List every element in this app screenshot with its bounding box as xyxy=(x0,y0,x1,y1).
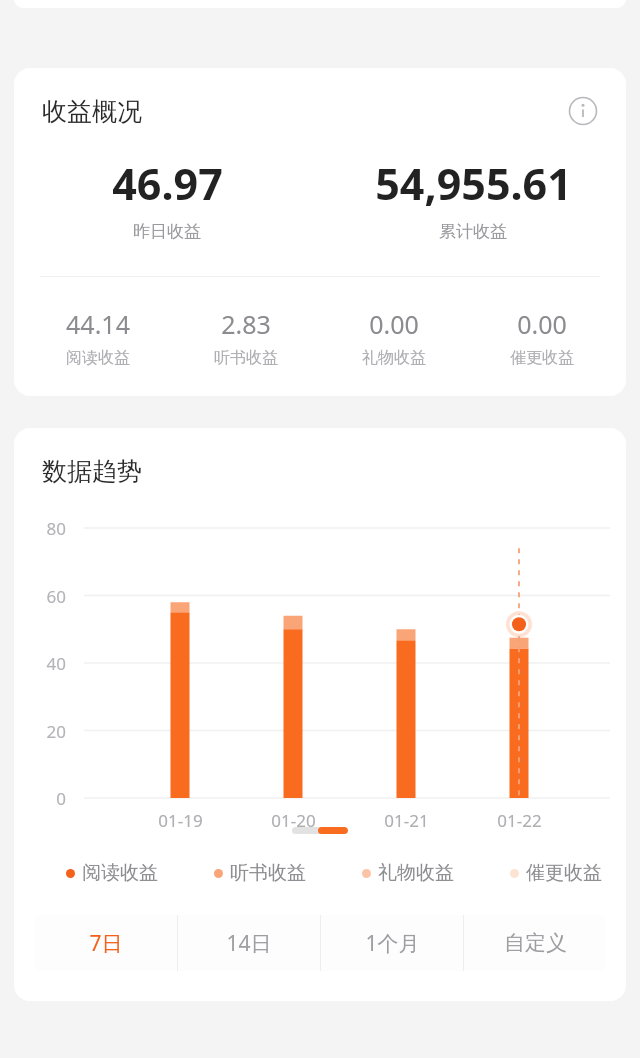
staticText: 54,955.61 xyxy=(375,154,572,213)
staticText: 阅读收益 xyxy=(66,348,130,368)
staticText: 催更收益 xyxy=(526,861,602,885)
staticText: 1个月 xyxy=(365,929,420,958)
staticText: 46.97 xyxy=(112,154,223,213)
button[interactable]: 0.00 xyxy=(468,307,616,368)
button[interactable]: 阅读收益 xyxy=(66,861,158,885)
staticText: 0.00 xyxy=(369,307,419,341)
button[interactable]: 礼物收益 xyxy=(362,861,454,885)
staticText: 40 xyxy=(46,652,66,675)
staticText: 阅读收益 xyxy=(82,861,158,885)
button[interactable]: 7日 xyxy=(34,915,177,971)
staticText: 累计收益 xyxy=(439,221,507,242)
button[interactable]: 54,955.61 xyxy=(320,154,626,242)
staticText: 44.14 xyxy=(66,307,130,341)
staticText: 催更收益 xyxy=(510,348,574,368)
staticText: 听书收益 xyxy=(230,861,306,885)
staticText: 20 xyxy=(46,720,66,743)
button[interactable]: 听书收益 xyxy=(214,861,306,885)
button[interactable]: 46.97 xyxy=(14,154,320,242)
button[interactable]: 2.83 xyxy=(172,307,320,368)
button[interactable]: 催更收益 xyxy=(510,861,602,885)
staticText: 礼物收益 xyxy=(362,348,426,368)
button[interactable]: 14日 xyxy=(178,915,320,971)
staticText: 数据趋势 xyxy=(42,456,142,487)
button[interactable]: 44.14 xyxy=(24,307,172,368)
staticText: 2.83 xyxy=(221,307,271,341)
button[interactable]: 自定义 xyxy=(464,915,606,971)
staticText: 0 xyxy=(56,787,66,810)
staticText: 自定义 xyxy=(504,930,567,956)
button[interactable]: 1个月 xyxy=(321,915,463,971)
staticText: 60 xyxy=(46,585,66,608)
staticText: 0.00 xyxy=(517,307,567,341)
staticText: 80 xyxy=(46,517,66,540)
staticText: 礼物收益 xyxy=(378,861,454,885)
staticText: 听书收益 xyxy=(214,348,278,368)
button[interactable]: 说明 xyxy=(566,94,600,128)
staticText: 01-22 xyxy=(497,809,542,832)
staticText: 14日 xyxy=(226,929,272,958)
staticText: 01-19 xyxy=(158,809,203,832)
staticText: 昨日收益 xyxy=(133,221,201,242)
staticText: 01-21 xyxy=(384,809,429,832)
staticText: 01-20 xyxy=(271,809,316,832)
staticText: 收益概况 xyxy=(42,96,142,127)
staticText: 7日 xyxy=(89,929,123,958)
button[interactable]: 0.00 xyxy=(320,307,468,368)
